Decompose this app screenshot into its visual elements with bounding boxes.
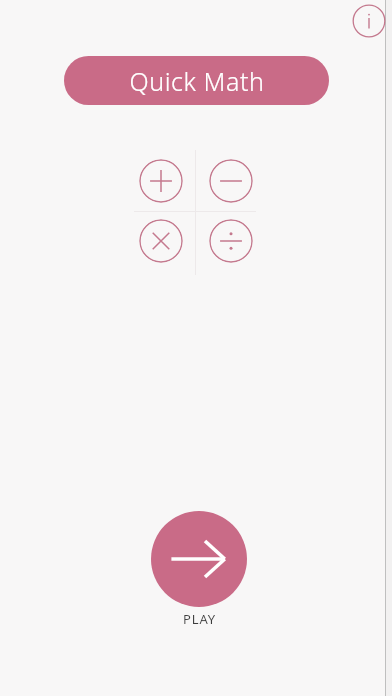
button[interactable]: Addition — [139, 159, 183, 203]
button[interactable]: Division — [209, 219, 253, 263]
button[interactable]: Multiplication — [139, 219, 183, 263]
staticText: PLAY — [183, 610, 216, 628]
button[interactable]: Subtraction — [209, 159, 253, 203]
button[interactable]: Play — [151, 511, 247, 607]
staticText: Quick Math — [129, 64, 265, 98]
button[interactable]: Quick Math — [64, 56, 329, 105]
button[interactable]: Info — [351, 3, 387, 39]
